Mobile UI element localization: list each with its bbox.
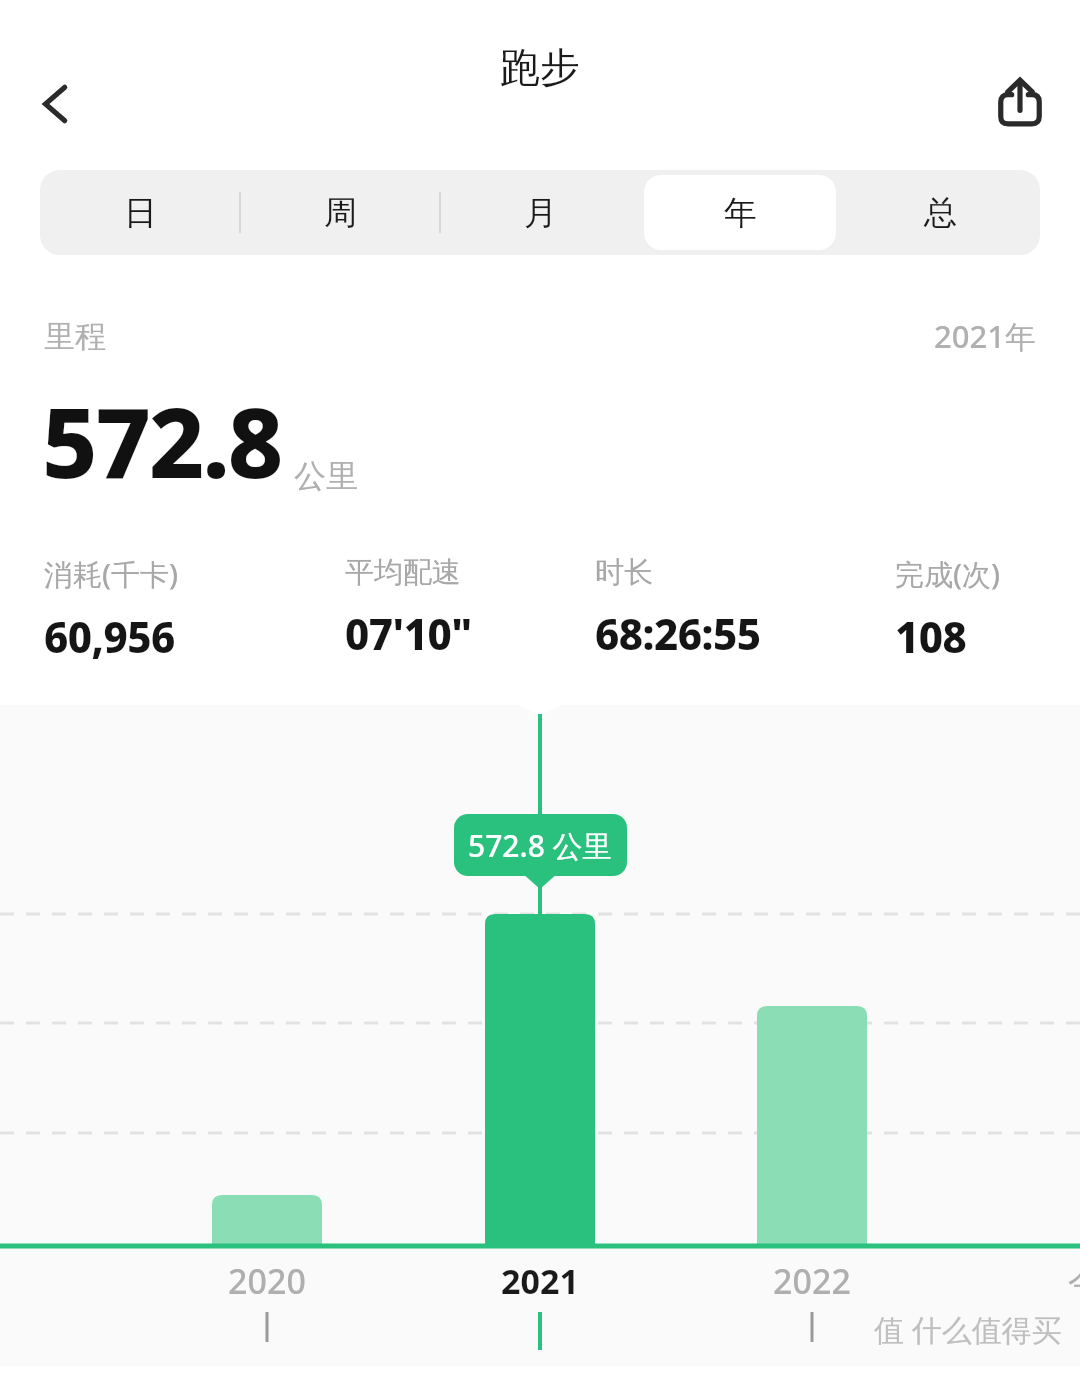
staticText: 周 <box>324 192 357 234</box>
staticText: 68:26:55 <box>595 605 761 662</box>
staticText: 2021 <box>501 1258 579 1304</box>
staticText: 2020 <box>228 1258 306 1304</box>
staticText: 今 <box>1068 1260 1080 1303</box>
button[interactable]: Back <box>18 66 94 142</box>
staticText: 07'10" <box>345 605 472 662</box>
button[interactable]: 周 <box>244 175 436 250</box>
staticText: 572.8 公里 <box>468 825 613 866</box>
staticText: 平均配速 <box>345 554 461 591</box>
staticText: 值 什么值得买 <box>874 1309 1062 1350</box>
staticText: 时长 <box>595 554 653 591</box>
button[interactable]: 年 <box>644 175 836 250</box>
button[interactable]: 月 <box>444 175 636 250</box>
staticText: 完成(次) <box>895 554 1001 594</box>
button[interactable]: 日 <box>44 175 236 250</box>
staticText: 2022 <box>773 1258 851 1304</box>
staticText: 跑步 <box>500 42 580 92</box>
button[interactable]: Share <box>980 62 1060 142</box>
staticText: 572.8 <box>42 375 282 506</box>
staticText: 月 <box>524 192 557 234</box>
staticText: 60,956 <box>44 608 175 665</box>
staticText: 日 <box>124 192 157 234</box>
button[interactable]: 总 <box>844 175 1036 250</box>
staticText: 总 <box>924 192 957 234</box>
staticText: 里程 <box>44 317 106 356</box>
staticText: 公里 <box>294 456 358 496</box>
staticText: 年 <box>724 192 757 234</box>
button[interactable]: 572.8 公里 <box>454 814 627 876</box>
staticText: 108 <box>895 608 967 665</box>
staticText: 消耗(千卡) <box>44 554 179 594</box>
staticText: 2021年 <box>934 315 1036 357</box>
